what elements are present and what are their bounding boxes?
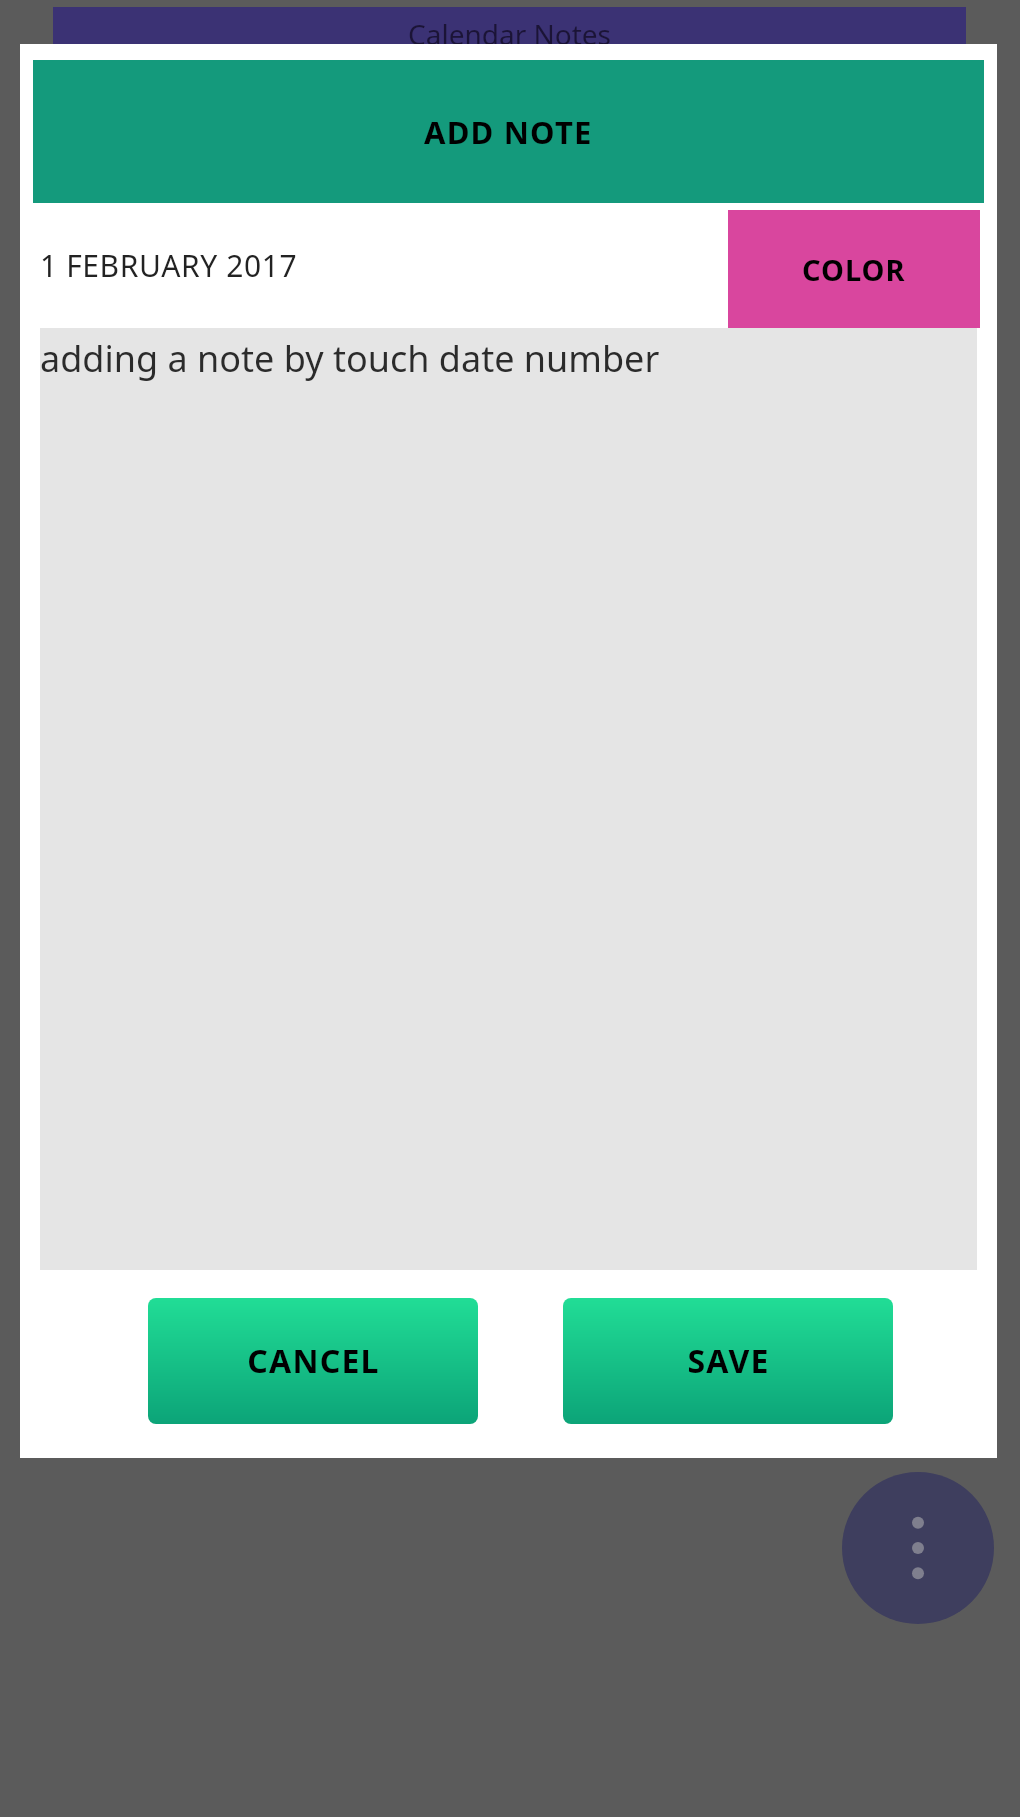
button[interactable]: ADD NOTE — [33, 60, 984, 203]
button[interactable]: 1 FEBRUARY 2017 — [20, 203, 710, 328]
staticText: COLOR — [802, 250, 906, 289]
button[interactable]: Calendar Notes — [53, 7, 966, 67]
staticText: Calendar Notes — [408, 15, 612, 53]
staticText: adding a note by touch date number — [40, 334, 660, 383]
button[interactable]: More options — [842, 1472, 994, 1624]
button[interactable]: COLOR — [728, 210, 980, 328]
staticText: ADD NOTE — [424, 111, 593, 153]
staticText: SAVE — [687, 1339, 770, 1383]
button[interactable]: SAVE — [563, 1298, 893, 1424]
staticText: 1 FEBRUARY 2017 — [40, 245, 298, 286]
button[interactable]: CANCEL — [148, 1298, 478, 1424]
staticText: CANCEL — [247, 1339, 380, 1383]
button[interactable]: adding a note by touch date number — [40, 328, 977, 1270]
